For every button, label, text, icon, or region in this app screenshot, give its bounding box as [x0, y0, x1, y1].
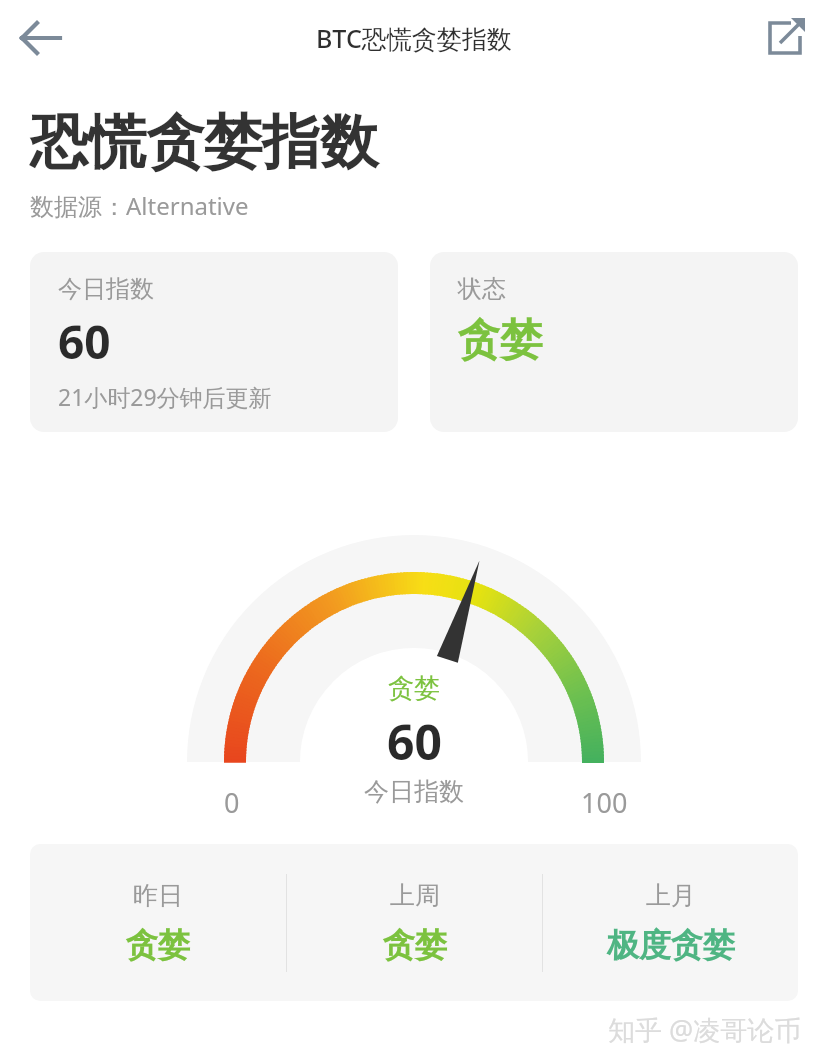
staticText: 状态	[458, 274, 506, 304]
button[interactable]: 上月	[543, 844, 798, 1001]
staticText: 今日指数	[58, 274, 154, 304]
button[interactable]: 状态	[430, 252, 798, 432]
button[interactable]: 今日指数	[30, 252, 398, 432]
staticText: 贪婪	[383, 925, 447, 965]
staticText: 21小时29分钟后更新	[58, 381, 272, 412]
staticText: 今日指数	[364, 776, 464, 807]
staticText: 0	[224, 784, 240, 821]
staticText: 贪婪	[458, 314, 542, 367]
button[interactable]: 上周	[287, 844, 542, 1001]
staticText: 上周	[390, 880, 440, 911]
button[interactable]: Back	[10, 7, 72, 69]
staticText: 数据源：Alternative	[30, 189, 249, 222]
staticText: 贪婪	[388, 672, 440, 705]
staticText: 100	[581, 784, 628, 821]
staticText: 贪婪	[126, 925, 190, 965]
staticText: 60	[58, 310, 111, 373]
staticText: BTC恐慌贪婪指数	[316, 21, 512, 55]
button[interactable]: Share	[756, 9, 814, 67]
staticText: 60	[387, 709, 442, 774]
staticText: 知乎 @凌哥论币	[608, 1011, 802, 1048]
staticText: 上月	[646, 880, 696, 911]
button[interactable]: 昨日	[30, 844, 286, 1001]
staticText: 恐慌贪婪指数	[30, 106, 378, 179]
staticText: 极度贪婪	[607, 925, 735, 965]
staticText: 昨日	[133, 880, 183, 911]
